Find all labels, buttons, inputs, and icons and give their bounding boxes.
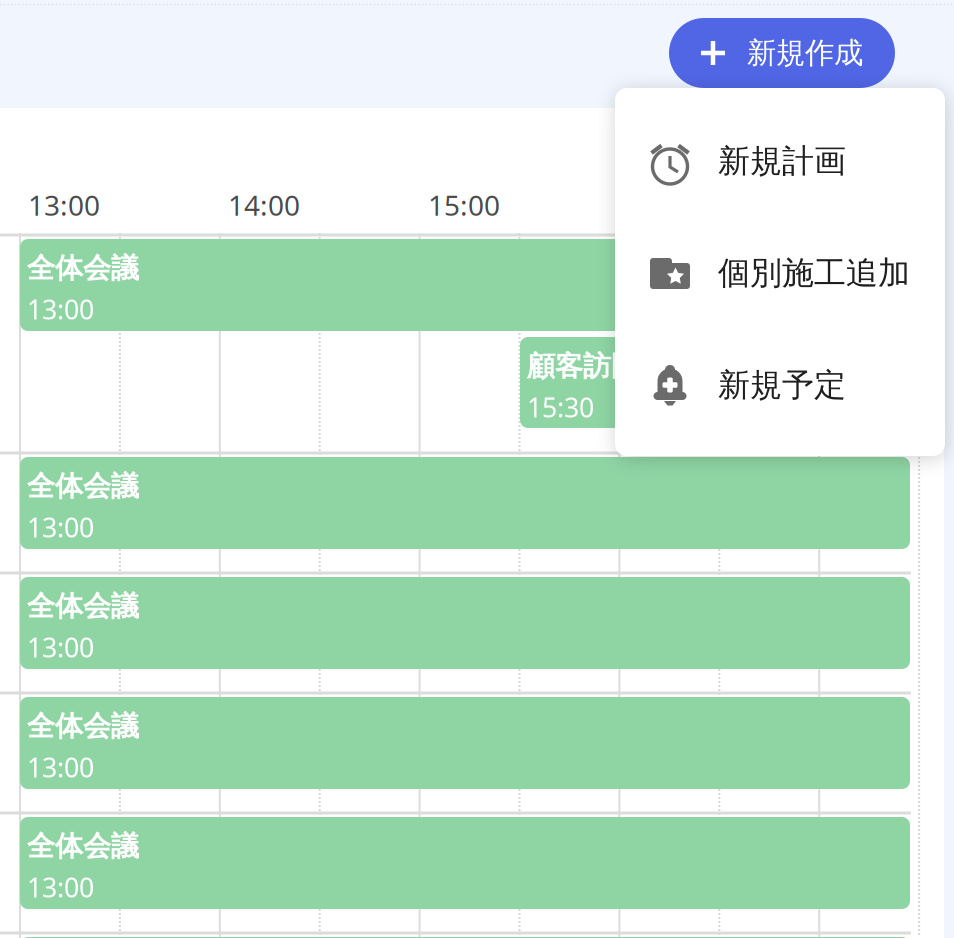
- staticText: 全体会議: [27, 251, 139, 285]
- staticText: 13:00: [27, 629, 94, 665]
- staticText: 個別施工追加: [718, 253, 910, 293]
- button[interactable]: 新規作成: [669, 18, 895, 88]
- button[interactable]: 新規予定: [615, 330, 945, 440]
- button[interactable]: 全体会議: [20, 937, 910, 938]
- button[interactable]: 全体会議: [20, 817, 910, 909]
- staticText: 15:00: [428, 186, 500, 224]
- staticText: 13:00: [27, 869, 94, 905]
- staticText: 13:00: [27, 749, 94, 785]
- staticText: 13:00: [27, 291, 94, 327]
- button[interactable]: 新規計画: [615, 106, 945, 216]
- button[interactable]: 全体会議: [20, 239, 910, 331]
- staticText: 全体会議: [27, 589, 139, 623]
- staticText: 全体会議: [27, 469, 139, 503]
- staticText: 14:00: [228, 186, 300, 224]
- staticText: 新規計画: [718, 141, 846, 181]
- staticText: 13:00: [27, 509, 94, 545]
- button[interactable]: 全体会議: [20, 697, 910, 789]
- staticText: 新規作成: [747, 35, 863, 71]
- staticText: 15:30: [527, 389, 594, 425]
- staticText: 13:00: [28, 186, 100, 224]
- staticText: 新規予定: [718, 365, 846, 405]
- button[interactable]: 顧客訪問: [520, 337, 680, 428]
- staticText: 全体会議: [27, 709, 139, 743]
- button[interactable]: 個別施工追加: [615, 218, 945, 328]
- button[interactable]: 全体会議: [20, 577, 910, 669]
- staticText: 全体会議: [27, 829, 139, 863]
- staticText: 顧客訪問: [527, 349, 639, 383]
- button[interactable]: 全体会議: [20, 457, 910, 549]
